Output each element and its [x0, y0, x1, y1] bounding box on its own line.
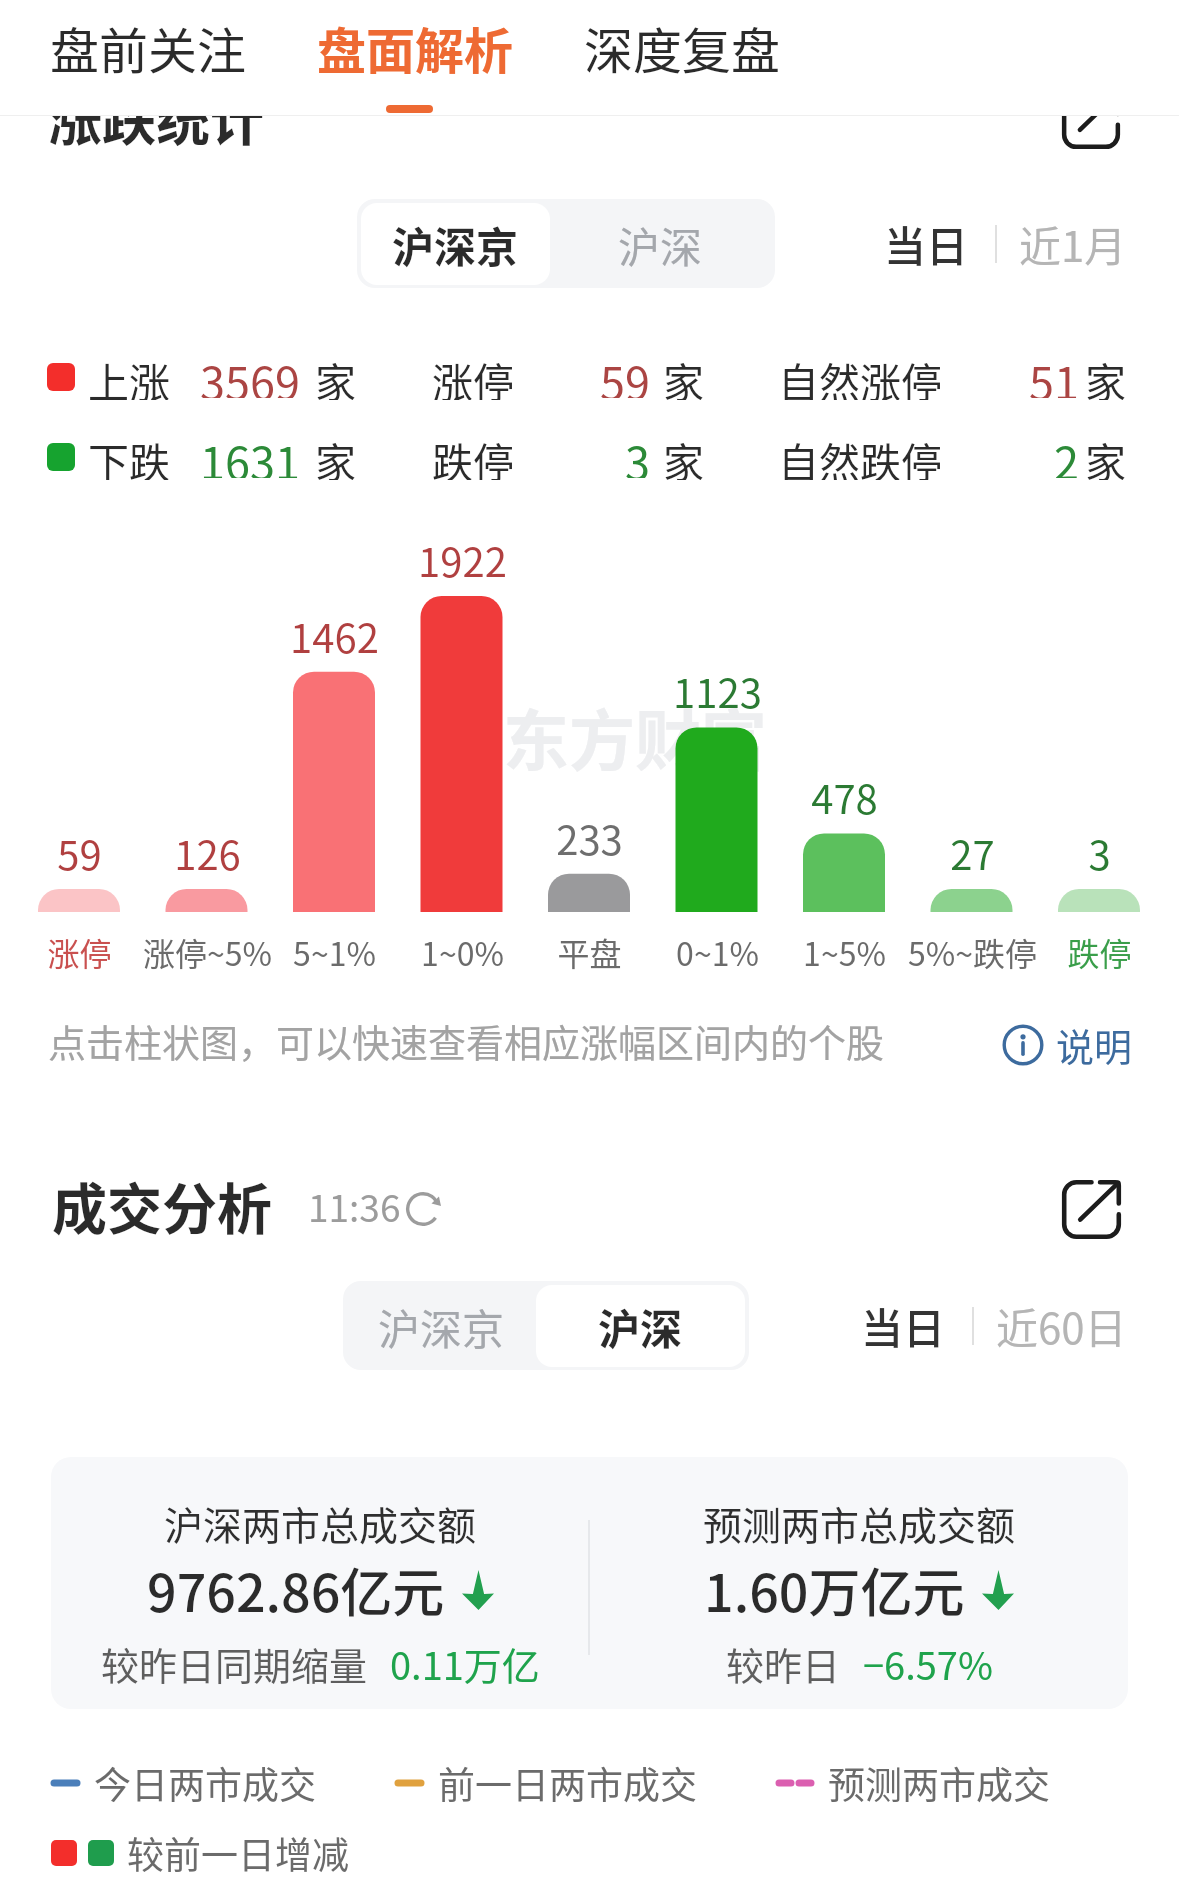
- staticText: 51: [1029, 348, 1079, 398]
- button[interactable]: 跌停: [1035, 879, 1163, 964]
- staticText: 当日: [884, 213, 969, 274]
- staticText: 家: [663, 350, 704, 400]
- button[interactable]: 平盘: [525, 864, 653, 964]
- staticText: 平盘: [557, 929, 622, 975]
- button[interactable]: 5%~跌停: [908, 879, 1036, 964]
- staticText: 沪深: [618, 214, 703, 275]
- staticText: 说明: [1056, 1017, 1133, 1072]
- staticText: 沪深京: [378, 1296, 505, 1357]
- button[interactable]: 沪深两市总成交额: [51, 1457, 589, 1709]
- staticText: 家: [315, 350, 356, 400]
- staticText: 预测两市成交: [828, 1756, 1050, 1810]
- staticText: 沪深两市总成交额: [164, 1495, 477, 1551]
- button[interactable]: 深度复盘: [584, 0, 781, 113]
- staticText: 1.60万亿元: [704, 1552, 965, 1627]
- staticText: 3: [1088, 824, 1111, 882]
- button[interactable]: 盘前关注: [50, 0, 247, 113]
- staticText: 涨停~5%: [143, 929, 272, 975]
- staticText: 较昨日: [726, 1636, 841, 1691]
- staticText: 家: [1085, 350, 1126, 400]
- staticText: 自然涨停: [778, 350, 942, 400]
- staticText: 今日两市成交: [94, 1756, 316, 1810]
- staticText: 0~1%: [676, 929, 759, 975]
- staticText: 5~1%: [293, 929, 376, 975]
- staticText: 成交分析: [52, 1165, 273, 1245]
- staticText: 1922: [418, 531, 507, 589]
- staticText: 9762.86亿元: [147, 1552, 445, 1627]
- button[interactable]: 5~1%: [270, 662, 398, 964]
- staticText: 涨停: [432, 350, 514, 400]
- staticText: 较昨日同期缩量: [101, 1636, 368, 1691]
- staticText: 涨跌统计: [48, 78, 264, 156]
- button[interactable]: 0~1%: [653, 717, 781, 964]
- staticText: 11:36: [308, 1179, 401, 1233]
- button[interactable]: 沪深: [536, 1285, 745, 1367]
- staticText: 当日: [861, 1295, 946, 1356]
- button[interactable]: 当日: [878, 203, 975, 284]
- staticText: 盘前关注: [50, 12, 247, 83]
- staticText: 家: [663, 430, 704, 480]
- staticText: 126: [174, 824, 241, 882]
- button[interactable]: 当日: [855, 1285, 952, 1366]
- button[interactable]: 涨停: [15, 879, 143, 964]
- staticText: 家: [315, 430, 356, 480]
- staticText: 较前一日增减: [127, 1826, 349, 1880]
- staticText: 盘面解析: [317, 12, 514, 83]
- button[interactable]: 盘面解析: [317, 0, 514, 113]
- staticText: 下跌: [88, 430, 170, 480]
- button[interactable]: 下跌: [0, 430, 1179, 480]
- staticText: 1462: [290, 607, 379, 665]
- staticText: 跌停: [432, 430, 514, 480]
- button[interactable]: 1~5%: [780, 823, 908, 964]
- staticText: 5%~跌停: [908, 929, 1037, 975]
- staticText: 近60日: [996, 1295, 1127, 1356]
- staticText: 1631: [200, 428, 300, 478]
- staticText: 上涨: [88, 350, 170, 400]
- staticText: 沪深: [598, 1296, 683, 1357]
- button[interactable]: 展开涨跌统计: [1061, 90, 1121, 150]
- button[interactable]: 打开成交分析: [1060, 1178, 1122, 1240]
- staticText: 3569: [200, 348, 300, 398]
- staticText: 涨停: [47, 929, 112, 975]
- staticText: 近1月: [1019, 213, 1127, 274]
- button[interactable]: 预测两市总成交额: [590, 1457, 1128, 1709]
- staticText: 深度复盘: [584, 12, 781, 83]
- button[interactable]: 沪深京: [347, 1285, 536, 1367]
- staticText: 59: [600, 348, 650, 398]
- button[interactable]: 近60日: [994, 1285, 1129, 1366]
- button[interactable]: 1~0%: [398, 586, 526, 964]
- staticText: 27: [950, 824, 995, 882]
- button[interactable]: 上涨: [0, 350, 1179, 400]
- staticText: 预测两市总成交额: [703, 1495, 1016, 1551]
- staticText: 0.11万亿: [390, 1636, 540, 1691]
- staticText: 1~5%: [803, 929, 886, 975]
- button[interactable]: 近1月: [1017, 203, 1129, 284]
- button[interactable]: 沪深京: [361, 203, 550, 285]
- staticText: 点击柱状图，可以快速查看相应涨幅区间内的个股: [48, 1013, 885, 1068]
- button[interactable]: 沪深: [550, 203, 771, 285]
- staticText: 1~0%: [421, 929, 504, 975]
- staticText: 1123: [673, 662, 762, 720]
- staticText: 家: [1085, 430, 1126, 480]
- staticText: −6.57%: [863, 1636, 993, 1691]
- staticText: 233: [556, 809, 623, 867]
- staticText: 3: [625, 428, 650, 478]
- button[interactable]: 涨停~5%: [143, 879, 271, 964]
- staticText: 478: [811, 768, 878, 826]
- staticText: 自然跌停: [778, 430, 942, 480]
- staticText: 59: [57, 824, 102, 882]
- staticText: 跌停: [1067, 929, 1132, 975]
- staticText: 前一日两市成交: [438, 1756, 697, 1810]
- staticText: 沪深京: [392, 214, 519, 275]
- staticText: 2: [1054, 428, 1079, 478]
- button[interactable]: 说明: [1002, 1017, 1133, 1072]
- staticText: 东方财富: [503, 688, 767, 784]
